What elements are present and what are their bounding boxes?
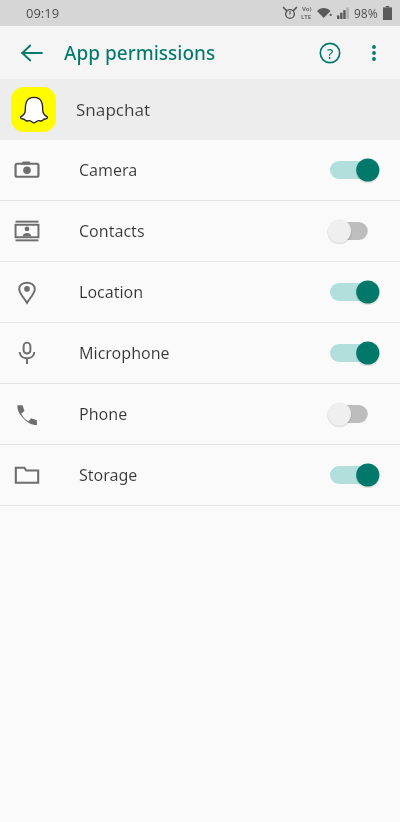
staticText: LTE xyxy=(301,13,312,21)
staticText: Snapchat xyxy=(76,98,151,121)
button[interactable]: Phone xyxy=(0,384,400,444)
button[interactable]: Camera xyxy=(0,140,400,200)
staticText: Contacts xyxy=(79,220,145,242)
button[interactable]: Storage xyxy=(0,445,400,505)
staticText: ? xyxy=(327,44,334,63)
button[interactable]: Contacts xyxy=(0,201,400,261)
staticText: Microphone xyxy=(79,342,170,364)
staticText: App permissions xyxy=(64,40,216,66)
staticText: Phone xyxy=(79,403,128,425)
staticText: 09:19 xyxy=(26,4,60,22)
button[interactable]: Snapchat xyxy=(0,79,400,140)
staticText: Camera xyxy=(79,159,138,181)
button[interactable]: Help xyxy=(308,31,352,75)
button[interactable]: Location xyxy=(0,262,400,322)
button[interactable]: Back xyxy=(10,31,54,75)
staticText: Location xyxy=(79,281,144,303)
button[interactable]: Microphone xyxy=(0,323,400,383)
staticText: Vo) xyxy=(302,5,312,13)
staticText: Storage xyxy=(79,464,138,486)
button[interactable]: More options xyxy=(352,31,396,75)
staticText: 98% xyxy=(354,5,378,21)
